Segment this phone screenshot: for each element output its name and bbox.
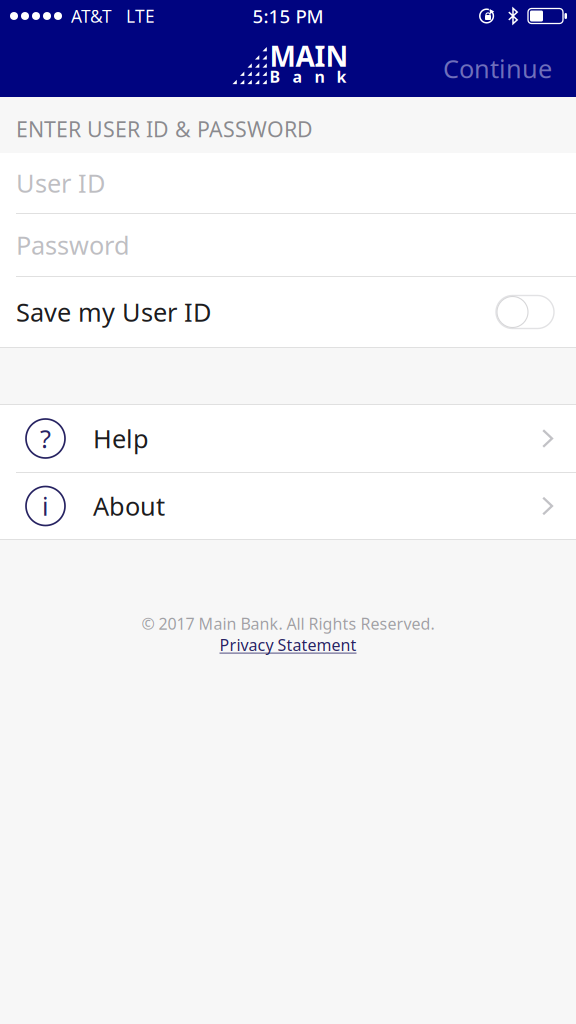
staticText: 5:15 PM [252,4,323,28]
staticText: a [292,66,302,87]
staticText: AT&T [71,4,112,27]
staticText: LTE [126,4,155,27]
staticText: Save my User ID [16,295,211,329]
button[interactable]: Password [0,214,576,277]
button[interactable]: User ID [0,153,576,214]
button[interactable]: ? [0,405,576,473]
staticText: ENTER USER ID & PASSWORD [16,115,313,143]
staticText: n [314,66,324,87]
staticText: About [93,489,165,523]
staticText: © 2017 Main Bank. All Rights Reserved. [141,613,434,634]
staticText: B [269,66,280,87]
staticText: ? [40,422,51,455]
button[interactable]: Privacy Statement [219,634,356,655]
staticText: Password [16,228,130,262]
button[interactable]: i [0,473,576,540]
staticText: User ID [16,166,105,200]
staticText: MAIN [269,37,348,75]
staticText: i [42,489,49,523]
staticText: k [336,66,346,87]
button[interactable]: Continue [425,35,576,94]
button[interactable]: Save my User ID [496,295,554,328]
staticText: Privacy Statement [219,634,356,655]
staticText: Continue [443,52,552,85]
staticText: Help [93,422,149,455]
